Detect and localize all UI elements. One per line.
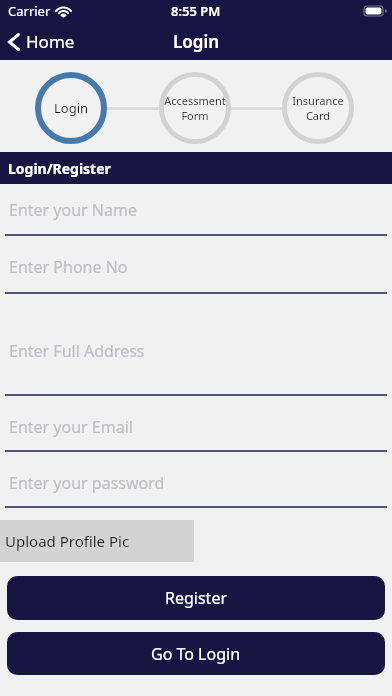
staticText: Carrier xyxy=(8,2,51,20)
button[interactable]: Login xyxy=(35,72,107,144)
staticText: Home xyxy=(26,30,75,53)
staticText: Enter your Email xyxy=(9,416,133,438)
staticText: Login xyxy=(21,99,121,117)
staticText: Accessment Form xyxy=(145,93,245,123)
button[interactable]: Home xyxy=(8,30,75,53)
staticText: Login xyxy=(173,30,220,53)
staticText: Insurance Card xyxy=(268,93,368,123)
button[interactable]: Accessment Form xyxy=(159,72,231,144)
staticText: Enter Full Address xyxy=(9,340,145,362)
button[interactable]: Enter your password xyxy=(0,452,392,508)
button[interactable]: Enter your Name xyxy=(0,184,392,236)
staticText: Login/Register xyxy=(8,159,111,178)
staticText: Upload Profile Pic xyxy=(5,531,130,551)
staticText: Enter your Name xyxy=(9,199,137,221)
staticText: 8:55 PM xyxy=(171,2,221,20)
button[interactable]: Insurance Card xyxy=(282,72,354,144)
staticText: Enter Phone No xyxy=(9,256,128,278)
staticText: Enter your password xyxy=(9,472,165,494)
staticText: Register xyxy=(165,587,228,609)
staticText: Go To Login xyxy=(151,643,241,665)
button[interactable]: Go To Login xyxy=(7,632,385,675)
button[interactable]: Enter Full Address xyxy=(0,294,392,396)
button[interactable]: Upload Profile Pic xyxy=(0,520,194,562)
button[interactable]: Enter your Email xyxy=(0,396,392,452)
button[interactable]: Enter Phone No xyxy=(0,236,392,294)
button[interactable]: Register xyxy=(7,576,385,620)
